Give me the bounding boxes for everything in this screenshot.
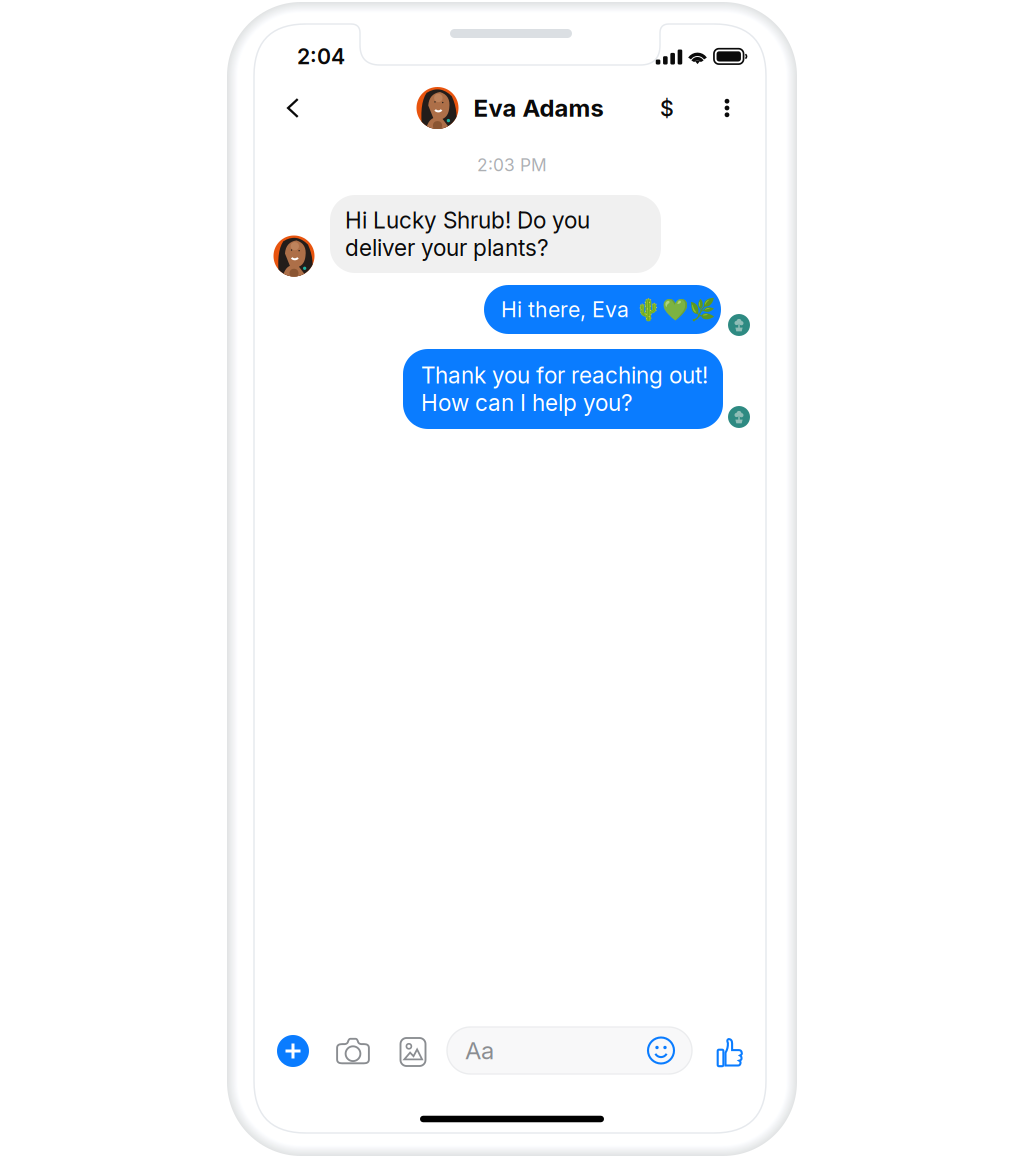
button[interactable]: Back (270, 82, 316, 134)
staticText: Aa (465, 1036, 494, 1065)
button[interactable]: More options (707, 83, 747, 133)
staticText: Thank you for reaching out! How can I he… (421, 362, 708, 416)
button[interactable]: Photos (391, 1028, 435, 1076)
button[interactable]: Payments (647, 83, 687, 133)
staticText: 2:03 PM (477, 154, 547, 175)
staticText: Eva Adams (473, 93, 603, 122)
staticText: 2:04 (297, 44, 345, 69)
button[interactable]: Open actions (271, 1027, 315, 1075)
staticText: Hi there, Eva 🌵💚🌿 (501, 297, 716, 322)
staticText: Hi Lucky Shrub! Do you deliver your plan… (345, 207, 590, 261)
staticText: $ (660, 96, 674, 121)
button[interactable]: Aa (447, 1027, 692, 1074)
button[interactable]: Send a like (709, 1028, 751, 1076)
button[interactable]: Camera (331, 1027, 375, 1075)
button[interactable]: Eva Adams (416, 87, 603, 129)
